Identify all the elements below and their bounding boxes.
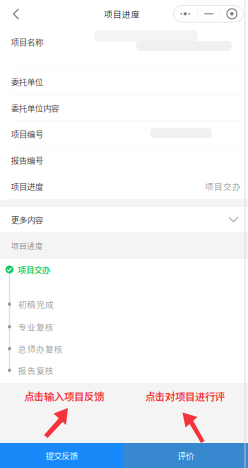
staticText: 点击输入项目反馈 [24, 389, 104, 403]
staticText: 总师办复核 [18, 342, 63, 355]
button[interactable]: Close [221, 6, 243, 22]
staticText: 初稿完成 [18, 298, 54, 310]
staticText: 更多内容 [11, 214, 43, 226]
button[interactable]: 提交反馈 [0, 443, 123, 468]
staticText: 评价 [177, 449, 193, 462]
staticText: 报告编号 [11, 154, 43, 166]
button[interactable]: 委托单位内容 [0, 95, 248, 121]
button[interactable]: 报告编号 [0, 147, 248, 173]
button[interactable]: Minimize [198, 6, 220, 22]
staticText: 委托单位内容 [11, 102, 59, 114]
button[interactable]: More [173, 6, 197, 22]
button[interactable]: 项目名称 [0, 28, 248, 68]
staticText: 项目名称 [11, 36, 43, 48]
staticText: 项目交办 [18, 263, 50, 276]
button[interactable]: 更多内容 [0, 207, 248, 232]
button[interactable]: 项目编号 [0, 121, 248, 147]
staticText: 提交反馈 [45, 449, 77, 462]
staticText: 项目进度 [104, 8, 140, 20]
staticText: 项目编号 [11, 128, 43, 140]
button[interactable]: 评价 [123, 443, 248, 468]
staticText: 专业复核 [18, 320, 54, 333]
button[interactable]: 项目进度 [0, 173, 248, 199]
button[interactable]: 委托单位 [0, 68, 248, 95]
staticText: 委托单位 [11, 76, 43, 88]
staticText: 项目进度 [11, 180, 43, 192]
staticText: 项目进度 [11, 240, 43, 251]
staticText: 项目交办 [205, 180, 241, 193]
staticText: 点击对项目进行评 [145, 389, 225, 403]
staticText: 报告复核 [18, 364, 54, 376]
button[interactable]: Back [1, 0, 31, 28]
